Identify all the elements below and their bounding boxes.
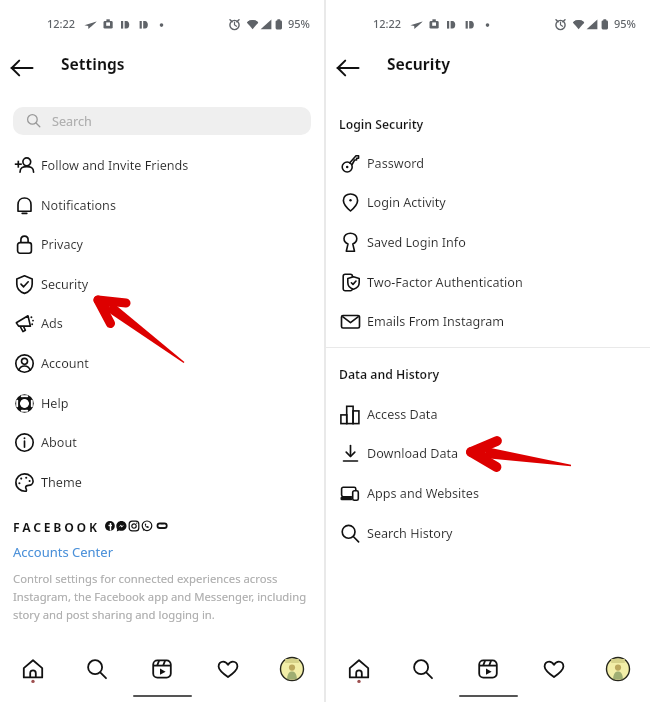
staticText: Security [41, 276, 89, 293]
button[interactable]: Two-Factor Authentication [326, 263, 650, 301]
button[interactable]: Activity [211, 652, 245, 686]
button[interactable]: Emails From Instagram [326, 302, 650, 340]
button[interactable]: Apps and Websites [326, 474, 650, 512]
staticText: Help [41, 395, 69, 412]
staticText: Saved Login Info [367, 234, 466, 251]
button[interactable]: Search History [326, 514, 650, 552]
staticText: 95% [614, 16, 636, 31]
staticText: Search [52, 113, 92, 130]
button[interactable]: Help [0, 384, 324, 422]
staticText: Privacy [41, 236, 84, 253]
staticText: Login Security [339, 116, 424, 133]
button[interactable]: Profile [275, 652, 309, 686]
staticText: Two-Factor Authentication [367, 274, 523, 291]
button[interactable]: Download Data [326, 434, 650, 472]
button[interactable]: Back [6, 52, 38, 84]
staticText: Settings [61, 53, 125, 74]
button[interactable]: Profile [601, 652, 635, 686]
button[interactable]: About [0, 423, 324, 461]
staticText: 95% [288, 16, 310, 31]
staticText: 12:22 [373, 16, 402, 31]
staticText: Download Data [367, 445, 459, 462]
staticText: Login Activity [367, 194, 446, 211]
button[interactable]: Account [0, 344, 324, 382]
button[interactable]: Notifications [0, 186, 324, 224]
button[interactable]: Follow and Invite Friends [0, 146, 324, 184]
button[interactable]: Activity [537, 652, 571, 686]
staticText: FACEBOOK [13, 519, 100, 536]
staticText: Password [367, 155, 424, 172]
staticText: Security [387, 53, 451, 74]
staticText: Follow and Invite Friends [41, 157, 189, 174]
staticText: Account [41, 355, 89, 372]
button[interactable]: Ads [0, 304, 324, 342]
staticText: Data and History [339, 366, 440, 383]
button[interactable]: Privacy [0, 225, 324, 263]
button[interactable]: Reels [145, 652, 179, 686]
staticText: Access Data [367, 406, 438, 423]
staticText: Apps and Websites [367, 485, 479, 502]
button[interactable]: Reels [471, 652, 505, 686]
button[interactable]: Accounts Center [13, 543, 113, 561]
button[interactable]: Password [326, 144, 650, 182]
button[interactable]: Security [0, 265, 324, 303]
button[interactable]: Search [13, 107, 311, 135]
staticText: Emails From Instagram [367, 313, 505, 330]
staticText: Ads [41, 315, 63, 332]
button[interactable]: Search [406, 652, 440, 686]
button[interactable]: Theme [0, 463, 324, 501]
button[interactable]: Search [80, 652, 114, 686]
staticText: Search History [367, 525, 453, 542]
button[interactable]: Back [332, 52, 364, 84]
button[interactable]: Home [16, 652, 50, 686]
staticText: Control settings for connected experienc… [13, 571, 313, 622]
staticText: Notifications [41, 197, 116, 214]
staticText: Theme [41, 474, 82, 491]
button[interactable]: Access Data [326, 395, 650, 433]
button[interactable]: Saved Login Info [326, 223, 650, 261]
staticText: About [41, 434, 77, 451]
button[interactable]: Login Activity [326, 183, 650, 221]
staticText: 12:22 [47, 16, 76, 31]
button[interactable]: Home [342, 652, 376, 686]
